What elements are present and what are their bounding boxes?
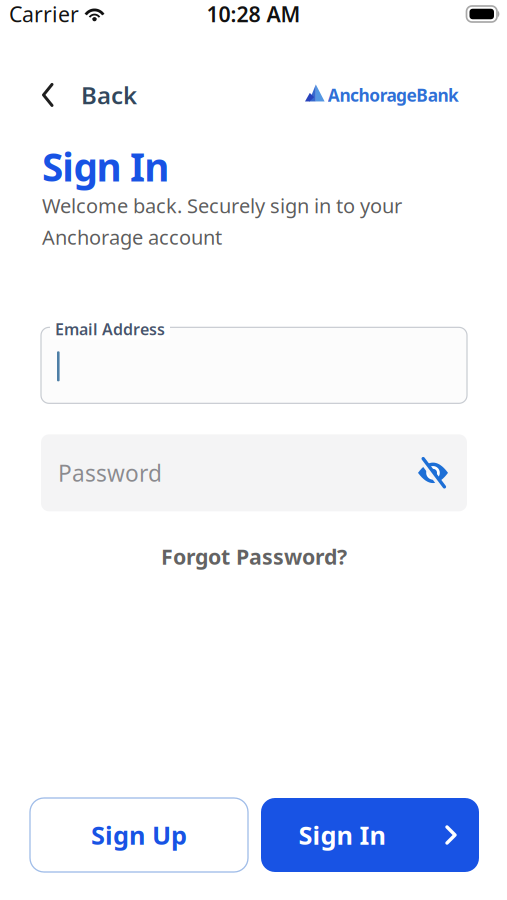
staticText: Email Address: [55, 318, 165, 339]
button[interactable]: Sign Up: [30, 798, 248, 872]
staticText: Password: [58, 458, 162, 488]
staticText: Back: [81, 79, 137, 111]
staticText: Sign In: [42, 141, 169, 192]
button[interactable]: Show password: [418, 458, 448, 488]
button[interactable]: Sign In: [261, 798, 479, 872]
staticText: AnchorageBank: [328, 83, 459, 106]
staticText: Sign In: [298, 818, 385, 852]
staticText: Carrier: [9, 0, 79, 28]
staticText: 10:28 AM: [206, 0, 300, 28]
button[interactable]: Back: [42, 79, 137, 111]
staticText: Welcome back. Securely sign in to your A…: [42, 192, 402, 250]
staticText: Forgot Password?: [161, 542, 347, 571]
staticText: Sign Up: [91, 818, 187, 852]
button[interactable]: Forgot Password?: [161, 542, 347, 571]
